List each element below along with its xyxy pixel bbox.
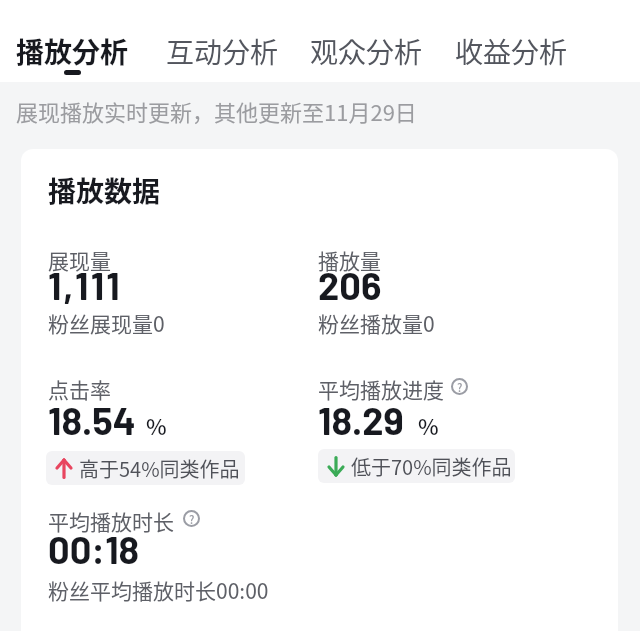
staticText: 粉丝播放量0 [318, 308, 435, 338]
staticText: 低于70%同类作品 [351, 452, 512, 481]
staticText: 平均播放时长 [48, 506, 174, 536]
staticText: 高于54%同类作品 [79, 454, 240, 483]
staticText: 1,111 [48, 262, 122, 308]
staticText: 粉丝平均播放时长00:00 [48, 575, 269, 605]
button[interactable]: 低于70%同类作品 [318, 449, 515, 483]
staticText: % [418, 409, 439, 441]
staticText: 收益分析 [455, 31, 568, 72]
staticText: 206 [318, 262, 382, 308]
button[interactable]: 收益分析 [449, 24, 567, 72]
staticText: 点击率 [48, 374, 111, 404]
staticText: ? [457, 379, 463, 395]
button[interactable]: 互动分析 [160, 24, 278, 72]
staticText: 展现播放实时更新，其他更新至11月29日 [16, 95, 417, 127]
staticText: 00:18 [48, 526, 140, 572]
staticText: 平均播放进度 [318, 374, 444, 404]
staticText: 粉丝展现量0 [48, 308, 165, 338]
staticText: 观众分析 [310, 31, 423, 72]
staticText: 18.54 [48, 397, 136, 443]
button[interactable]: ? [451, 378, 468, 395]
staticText: % [146, 409, 167, 441]
staticText: 18.29 [318, 397, 404, 443]
staticText: 互动分析 [166, 31, 279, 72]
button[interactable]: 播放分析 [10, 24, 130, 72]
button[interactable]: 高于54%同类作品 [46, 451, 245, 485]
staticText: 播放数据 [48, 170, 161, 211]
button[interactable]: 观众分析 [304, 24, 422, 72]
staticText: 播放分析 [16, 31, 129, 72]
button[interactable]: ? [183, 510, 200, 527]
staticText: 播放量 [318, 245, 381, 275]
staticText: 展现量 [48, 245, 111, 275]
staticText: ? [189, 511, 195, 527]
